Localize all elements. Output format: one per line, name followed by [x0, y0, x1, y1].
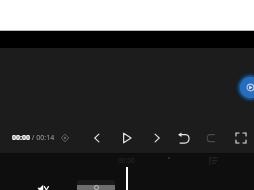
staticText: / 00:14 — [30, 133, 55, 143]
button[interactable]: Previous — [88, 129, 106, 147]
button[interactable]: Loop playback — [175, 129, 193, 147]
staticText: 00:00 — [118, 156, 135, 165]
button[interactable]: Quality settings — [56, 129, 74, 147]
button[interactable]: Play — [118, 129, 136, 147]
button[interactable]: Next — [148, 129, 166, 147]
button[interactable]: Fullscreen — [232, 129, 250, 147]
button[interactable]: Play video — [234, 71, 254, 104]
button[interactable]: Video clip — [77, 180, 115, 190]
staticText: 00:00 — [12, 133, 30, 143]
button[interactable]: Repeat — [202, 129, 220, 147]
